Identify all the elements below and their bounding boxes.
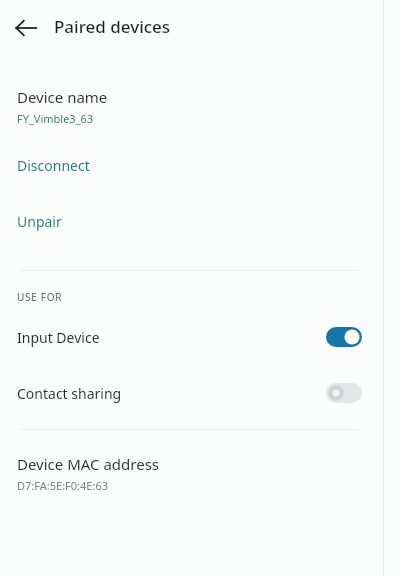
- staticText: Disconnect: [17, 156, 90, 175]
- staticText: D7:FA:5E:F0:4E:63: [17, 478, 108, 493]
- staticText: Contact sharing: [17, 384, 122, 403]
- staticText: Input Device: [17, 328, 100, 347]
- button[interactable]: Input Device: [0, 320, 400, 354]
- staticText: FY_Vimble3_63: [17, 111, 94, 126]
- button[interactable]: Back: [6, 8, 46, 48]
- staticText: Unpair: [17, 212, 62, 231]
- button[interactable]: Contact sharing toggle: [318, 376, 370, 410]
- staticText: Device MAC address: [17, 454, 160, 474]
- staticText: USE FOR: [17, 290, 63, 304]
- button[interactable]: Unpair: [0, 208, 400, 234]
- button[interactable]: Disconnect: [0, 152, 400, 178]
- staticText: Paired devices: [54, 15, 171, 38]
- button[interactable]: Input Device toggle: [318, 320, 370, 354]
- button[interactable]: Contact sharing: [0, 376, 400, 410]
- staticText: Device name: [17, 87, 108, 107]
